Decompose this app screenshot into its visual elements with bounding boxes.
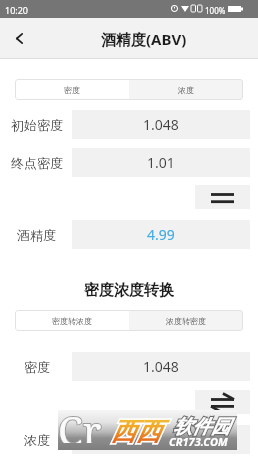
- staticText: Cr: [58, 403, 102, 443]
- button[interactable]: Calculate: [195, 185, 250, 209]
- staticText: 西西: [111, 416, 161, 447]
- staticText: 酒精度: [17, 227, 56, 243]
- button[interactable]: 1.01: [72, 148, 250, 177]
- button[interactable]: 1.048: [72, 110, 250, 139]
- staticText: 浓度: [24, 432, 50, 448]
- button[interactable]: 浓度: [129, 79, 243, 100]
- staticText: 4.99: [147, 225, 175, 244]
- staticText: 密度: [24, 359, 50, 375]
- button[interactable]: Back: [0, 18, 38, 59]
- staticText: 软件园: [173, 415, 230, 439]
- staticText: 10:20: [5, 4, 29, 16]
- staticText: 1.01: [147, 153, 175, 172]
- button[interactable]: 4.99: [72, 220, 250, 249]
- button[interactable]: 密度转浓度: [15, 310, 129, 331]
- staticText: 浓度: [178, 85, 194, 95]
- staticText: 1.048: [143, 357, 179, 376]
- staticText: 密度浓度转换: [84, 281, 174, 300]
- staticText: 100%: [205, 5, 226, 16]
- button[interactable]: 浓度转密度: [129, 310, 243, 331]
- staticText: 终点密度: [11, 155, 63, 171]
- staticText: 浓度转密度: [166, 316, 206, 326]
- staticText: 1.048: [143, 115, 179, 134]
- staticText: 密度: [64, 85, 80, 95]
- button[interactable]: Swap: [195, 390, 250, 414]
- staticText: 密度转浓度: [52, 316, 92, 326]
- button[interactable]: 密度: [15, 79, 129, 100]
- staticText: 酒精度(ABV): [101, 29, 187, 49]
- staticText: CR173.COM: [169, 434, 228, 449]
- button[interactable]: [72, 425, 250, 454]
- button[interactable]: 1.048: [72, 352, 250, 381]
- staticText: 初始密度: [11, 117, 63, 133]
- staticText: 软件园: [173, 415, 230, 439]
- staticText: Cr: [58, 403, 102, 443]
- staticText: 西西: [111, 416, 161, 447]
